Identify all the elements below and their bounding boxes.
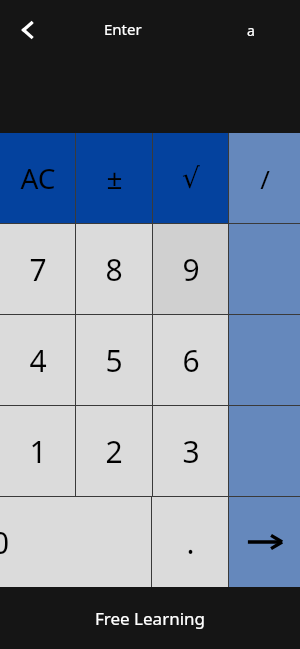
button[interactable]: 4 bbox=[0, 315, 75, 405]
staticText: Enter bbox=[104, 19, 142, 39]
button[interactable]: 2 bbox=[76, 406, 152, 496]
button[interactable]: 8 bbox=[76, 224, 152, 314]
staticText: 5 bbox=[105, 340, 123, 381]
staticText: 6 bbox=[182, 340, 200, 381]
staticText: 7 bbox=[29, 249, 47, 290]
button[interactable]: Equals bbox=[229, 497, 300, 587]
staticText: AC bbox=[20, 159, 56, 197]
button[interactable]: 9 bbox=[153, 224, 228, 314]
button[interactable]: / bbox=[229, 133, 300, 223]
button[interactable]: 6 bbox=[153, 315, 228, 405]
button[interactable]: 3 bbox=[153, 406, 228, 496]
staticText: 3 bbox=[182, 431, 200, 472]
button[interactable]: 5 bbox=[76, 315, 152, 405]
button[interactable]: √ bbox=[153, 133, 228, 223]
button[interactable]: AC bbox=[0, 133, 75, 223]
staticText: 1 bbox=[29, 431, 47, 472]
button[interactable]: Back bbox=[8, 10, 48, 50]
staticText: 8 bbox=[105, 249, 123, 290]
staticText: 4 bbox=[29, 340, 47, 381]
button[interactable]: 1 bbox=[0, 406, 75, 496]
staticText: 2 bbox=[105, 431, 123, 472]
button[interactable]: 0 bbox=[0, 497, 151, 587]
staticText: 9 bbox=[182, 249, 200, 290]
staticText: / bbox=[260, 161, 270, 196]
button[interactable]: . bbox=[152, 497, 228, 587]
staticText: Free Learning bbox=[95, 607, 206, 630]
staticText: a bbox=[247, 21, 255, 40]
staticText: √ bbox=[182, 162, 200, 195]
staticText: . bbox=[186, 522, 195, 563]
button[interactable]: a bbox=[236, 12, 266, 48]
staticText: ± bbox=[106, 159, 123, 197]
button[interactable]: ± bbox=[76, 133, 152, 223]
staticText: 0 bbox=[0, 522, 10, 563]
button[interactable]: 7 bbox=[0, 224, 75, 314]
